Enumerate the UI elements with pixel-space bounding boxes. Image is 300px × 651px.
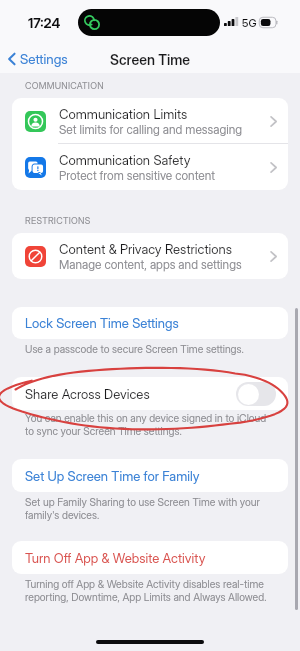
staticText: Content & Privacy Restrictions bbox=[59, 241, 232, 257]
staticText: Lock Screen Time Settings bbox=[25, 315, 179, 331]
button[interactable]: Share Across Devices bbox=[12, 377, 288, 410]
staticText: 17:24 bbox=[28, 15, 61, 31]
button[interactable]: Lock Screen Time Settings bbox=[12, 307, 288, 339]
staticText: Use a passcode to secure Screen Time set… bbox=[25, 343, 277, 356]
staticText: COMMUNICATION bbox=[25, 80, 104, 91]
button[interactable]: Communication Limits bbox=[12, 98, 288, 144]
button[interactable]: Set Up Screen Time for Family bbox=[12, 459, 288, 492]
staticText: Turning off App & Website Activity disab… bbox=[25, 578, 277, 604]
staticText: Protect from sensitive content bbox=[59, 168, 215, 183]
button[interactable]: Turn Off App & Website Activity bbox=[12, 541, 288, 574]
staticText: Communication Safety bbox=[59, 152, 191, 168]
button[interactable]: Communication Safety bbox=[12, 144, 288, 190]
staticText: Communication Limits bbox=[59, 106, 188, 122]
staticText: Settings bbox=[20, 51, 68, 67]
staticText: RESTRICTIONS bbox=[25, 215, 91, 226]
button[interactable]: Settings bbox=[3, 45, 73, 73]
button[interactable]: Content & Privacy Restrictions bbox=[12, 233, 288, 279]
staticText: Screen Time bbox=[110, 51, 191, 68]
staticText: You can enable this on any device signed… bbox=[25, 412, 277, 438]
staticText: 5G bbox=[242, 16, 257, 29]
staticText: Set Up Screen Time for Family bbox=[25, 468, 200, 484]
staticText: Manage content, apps and settings bbox=[59, 257, 242, 272]
staticText: Set up Family Sharing to use Screen Time… bbox=[25, 496, 277, 522]
staticText: Set limits for calling and messaging bbox=[59, 122, 243, 137]
staticText: Turn Off App & Website Activity bbox=[25, 550, 206, 566]
staticText: Share Across Devices bbox=[25, 386, 150, 402]
